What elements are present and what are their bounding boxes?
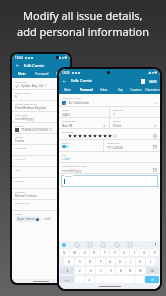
button[interactable]: P [150, 249, 159, 256]
button[interactable]: M [136, 267, 145, 274]
button[interactable]: Z [75, 267, 85, 274]
button[interactable]: Series Title [12, 79, 70, 90]
button[interactable]: ?123 [60, 276, 74, 283]
staticText: add personal information [17, 24, 149, 39]
button[interactable]: U [120, 249, 129, 256]
staticText: mm/dd/yyyy [62, 168, 82, 172]
button[interactable]: Tool 0 [75, 243, 79, 247]
button[interactable]: Value [51, 70, 70, 78]
button[interactable]: Tool 4 [128, 243, 132, 247]
button[interactable]: Read Date [104, 140, 160, 151]
button[interactable]: R [90, 249, 99, 256]
staticText: N [129, 269, 132, 273]
button[interactable]: Key [112, 86, 128, 94]
button[interactable]: Barcode [12, 123, 70, 134]
button[interactable]: O [140, 249, 149, 256]
button[interactable]: G [106, 258, 115, 265]
staticText: Publisher [15, 190, 26, 193]
button[interactable]: Personal [32, 70, 51, 78]
button[interactable]: Tool 2 [101, 243, 105, 247]
button[interactable]: Tag [59, 152, 160, 162]
button[interactable]: Enter [145, 276, 159, 283]
button[interactable]: H [116, 258, 125, 265]
button[interactable]: My Rating [59, 129, 160, 139]
button[interactable]: Read It [59, 140, 103, 151]
staticText: Cover Date [15, 113, 28, 116]
button[interactable]: L [146, 258, 155, 265]
staticText: Personal [35, 72, 49, 76]
button[interactable]: Back [62, 79, 67, 84]
button[interactable]: Google [62, 243, 66, 247]
staticText: U [123, 251, 126, 255]
button[interactable]: X [86, 267, 95, 274]
button[interactable]: V [106, 267, 115, 274]
button[interactable]: Collection Status [59, 95, 160, 106]
button[interactable]: Characters [144, 86, 160, 94]
staticText: Value [56, 72, 65, 76]
staticText: Series Group [15, 201, 30, 204]
button[interactable]: Main [59, 86, 76, 94]
button[interactable]: SAVE [149, 79, 157, 84]
button[interactable]: T [100, 249, 109, 256]
button[interactable]: A [64, 258, 74, 265]
staticText: Owner [113, 119, 121, 122]
button[interactable]: Tool 1 [88, 243, 92, 247]
button[interactable]: . [135, 276, 144, 283]
button[interactable]: K [136, 258, 145, 265]
staticText: Main [18, 72, 26, 76]
button[interactable]: Voice input [154, 243, 157, 246]
button[interactable]: ⬆ [60, 267, 74, 274]
staticText: Z [79, 269, 81, 273]
button[interactable]: Y [110, 249, 119, 256]
button[interactable]: Personal [76, 86, 96, 94]
button[interactable]: Issue Number [12, 90, 70, 101]
button[interactable]: ☺ [85, 276, 94, 283]
button[interactable]: Series Group [12, 200, 70, 211]
button[interactable]: Tool 3 [115, 243, 119, 247]
button[interactable]: Title [12, 167, 70, 178]
button[interactable]: Index [59, 107, 109, 117]
button[interactable]: B [116, 267, 125, 274]
button[interactable]: C [96, 267, 105, 274]
button[interactable]: S [75, 258, 85, 265]
button[interactable]: Creators [128, 86, 144, 94]
staticText: Format [15, 135, 24, 138]
button[interactable]: D [86, 258, 95, 265]
button[interactable]: I [130, 249, 139, 256]
button[interactable]: Notes [61, 175, 158, 187]
button[interactable]: Subtitle [12, 178, 70, 189]
button[interactable]: Super Heroes [15, 216, 41, 222]
button[interactable]: Variant Description [12, 101, 70, 112]
button[interactable]: Main [12, 70, 32, 78]
button[interactable]: ⌫ [146, 267, 159, 274]
button[interactable]: Cover Date [12, 112, 70, 123]
staticText: 1 [113, 112, 115, 116]
button[interactable]: Story Arc [12, 156, 70, 167]
button[interactable]: Value [96, 86, 112, 94]
staticText: + Add [43, 217, 51, 221]
button[interactable]: Storage Box [59, 118, 109, 128]
button[interactable]: Last Bag/Board Date [59, 163, 160, 173]
button[interactable]: Q [60, 249, 69, 256]
button[interactable]: Publisher [12, 189, 70, 200]
staticText: Creators [130, 88, 142, 92]
button[interactable]: Format [12, 134, 70, 145]
staticText: Storage Box [62, 119, 77, 122]
button[interactable]: Quantity [110, 107, 160, 117]
staticText: V [110, 269, 112, 273]
button[interactable]: J [126, 258, 135, 265]
button[interactable]: Owner [110, 118, 160, 128]
button[interactable]: Back [12, 61, 70, 70]
staticText: J [130, 260, 131, 264]
button[interactable]: E [80, 249, 89, 256]
button[interactable]: F [96, 258, 105, 265]
button[interactable]: N [126, 267, 135, 274]
button[interactable]: W [70, 249, 79, 256]
button[interactable]: , [75, 276, 84, 283]
button[interactable]: Crossover [12, 145, 70, 156]
staticText: Key [118, 88, 123, 92]
